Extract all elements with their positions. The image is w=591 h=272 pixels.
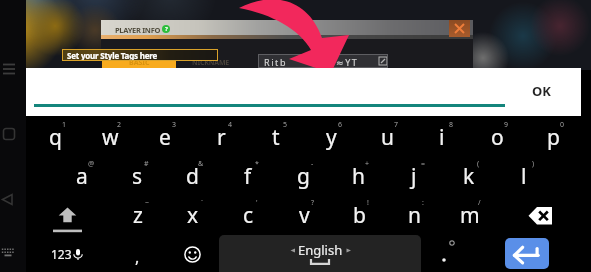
button[interactable]: ! [331, 194, 387, 233]
staticText: 9 [504, 120, 509, 130]
button[interactable]: 7 [359, 116, 415, 155]
button[interactable]: ~ [110, 194, 166, 233]
staticText: v [299, 201, 310, 230]
button[interactable]: 4 [193, 116, 249, 155]
staticText: w [102, 123, 119, 152]
button[interactable]: 8 [414, 116, 470, 155]
button[interactable]: OK [515, 76, 567, 106]
button[interactable]: ) [496, 155, 552, 194]
staticText: NICKNAME [192, 58, 230, 68]
staticText: - [311, 159, 314, 169]
button[interactable]: Enter [505, 238, 549, 269]
button[interactable]: Ritb [258, 54, 388, 68]
staticText: English [298, 241, 343, 259]
staticText: Set your Style Tags here [67, 50, 158, 61]
staticText: # [144, 159, 149, 169]
staticText: q [49, 123, 62, 152]
staticText: b [353, 201, 366, 230]
button[interactable]: 5 [248, 116, 304, 155]
staticText: u [381, 123, 394, 152]
staticText: o [491, 123, 504, 152]
button[interactable]: / [442, 194, 498, 233]
staticText: ≈YT [336, 56, 359, 68]
staticText: p [547, 123, 560, 152]
staticText: @ [88, 159, 95, 169]
button[interactable]: Close [449, 20, 470, 37]
staticText: ! [367, 198, 369, 208]
staticText: , [135, 246, 140, 268]
staticText: * [255, 159, 259, 169]
staticText: s [132, 162, 143, 191]
staticText: k [463, 162, 475, 191]
staticText: i [439, 123, 445, 152]
button[interactable] [416, 233, 472, 272]
staticText: ~ [145, 198, 150, 208]
staticText: 6 [338, 120, 343, 130]
staticText: h [352, 162, 365, 191]
button[interactable]: @ [54, 155, 110, 194]
staticText: x [187, 201, 199, 230]
button[interactable]: 2 [82, 116, 138, 155]
staticText: + [365, 159, 370, 169]
button[interactable]: 6 [303, 116, 359, 155]
staticText: 123 [51, 246, 72, 262]
staticText: ? [311, 198, 315, 208]
button[interactable]: ? [276, 194, 332, 233]
staticText: n [408, 201, 421, 230]
button[interactable]: Set your Style Tags here [62, 49, 218, 61]
button[interactable]: Back [1, 193, 14, 206]
staticText: 3 [172, 120, 177, 130]
staticText: ' [256, 198, 258, 208]
staticText: j [411, 162, 417, 191]
button[interactable]: ( [441, 155, 497, 194]
button[interactable]: & [164, 155, 220, 194]
staticText: c [243, 201, 254, 230]
button[interactable]: # [109, 155, 165, 194]
staticText: 7 [394, 120, 399, 130]
staticText: OK [532, 82, 551, 100]
staticText: g [297, 162, 310, 191]
staticText: 2 [117, 120, 122, 130]
staticText: a [76, 162, 88, 191]
staticText: BASIC [129, 58, 150, 68]
button[interactable]: 123 [38, 233, 96, 272]
staticText: = [421, 159, 426, 169]
staticText: f [244, 162, 252, 191]
staticText: r [217, 123, 226, 152]
button[interactable]: = [386, 155, 442, 194]
staticText: ` [201, 198, 203, 208]
button[interactable]: 1 [27, 116, 83, 155]
button[interactable]: NICKNAME [176, 58, 246, 70]
button[interactable]: Backspace [514, 194, 566, 233]
button[interactable]: * [220, 155, 276, 194]
button[interactable]: ` [165, 194, 221, 233]
button[interactable]: English [219, 235, 421, 272]
button[interactable]: Switch keyboard [1, 246, 15, 260]
staticText: 4 [228, 120, 233, 130]
staticText: Ritb [264, 56, 288, 68]
button[interactable]: - [275, 155, 331, 194]
staticText: y [326, 123, 337, 152]
button[interactable]: + [330, 155, 386, 194]
staticText: ? [165, 25, 168, 33]
button[interactable]: ' [220, 194, 276, 233]
button[interactable]: 9 [469, 116, 525, 155]
staticText: 8 [449, 120, 454, 130]
button[interactable]: BASIC [102, 58, 176, 70]
button[interactable]: 3 [137, 116, 193, 155]
button[interactable]: : [386, 194, 442, 233]
button[interactable]: Menu [2, 62, 16, 76]
button[interactable]: , [111, 233, 161, 272]
button[interactable]: Recents [2, 127, 16, 141]
staticText: ) [532, 159, 535, 169]
button[interactable]: Shift [40, 194, 95, 233]
staticText: 1 [62, 120, 67, 130]
button[interactable]: Emoji [167, 233, 218, 272]
staticText: m [460, 201, 480, 230]
staticText: ( [477, 159, 480, 169]
staticText: / [478, 198, 481, 208]
staticText: e [159, 123, 171, 152]
staticText: 0 [560, 120, 565, 130]
staticText: & [198, 159, 204, 169]
button[interactable]: 0 [525, 116, 581, 155]
